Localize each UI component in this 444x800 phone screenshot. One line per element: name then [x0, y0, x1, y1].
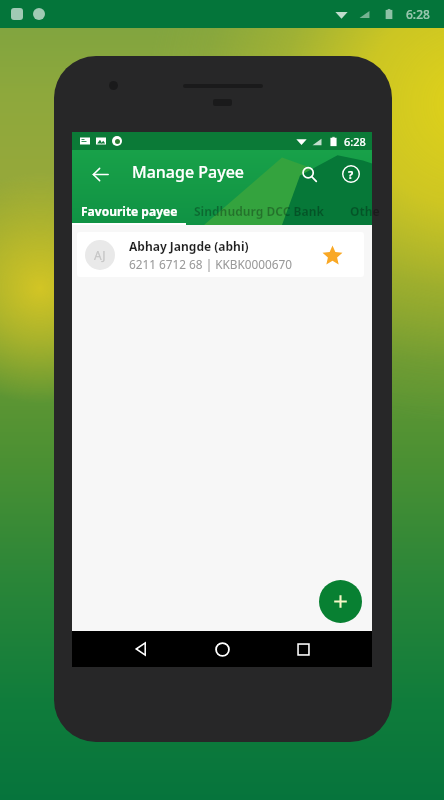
staticText: Manage Payee: [132, 161, 245, 183]
button[interactable]: Search: [288, 153, 330, 195]
staticText: 6211 6712 68 | KKBK0000670: [129, 256, 293, 272]
staticText: Sindhudurg DCC Bank: [194, 203, 324, 219]
button[interactable]: Home: [182, 631, 263, 667]
staticText: Othe: [350, 203, 380, 219]
staticText: 6:28: [344, 134, 366, 149]
button[interactable]: Favourite payee: [72, 197, 186, 225]
button[interactable]: AJ: [77, 232, 364, 277]
staticText: AJ: [94, 247, 106, 263]
button[interactable]: Sindhudurg DCC Bank: [186, 197, 332, 225]
staticText: Abhay Jangde (abhi): [129, 238, 249, 254]
staticText: Favourite payee: [81, 203, 178, 219]
button[interactable]: Recents: [263, 631, 344, 667]
button[interactable]: Back: [78, 152, 122, 196]
staticText: 6:28: [406, 6, 430, 22]
button[interactable]: Othe: [332, 197, 372, 225]
button[interactable]: Back: [100, 631, 182, 667]
button[interactable]: Help: [330, 153, 372, 195]
button[interactable]: Favourite: [320, 243, 344, 267]
staticText: ?: [348, 167, 354, 182]
button[interactable]: Add payee: [319, 580, 362, 623]
